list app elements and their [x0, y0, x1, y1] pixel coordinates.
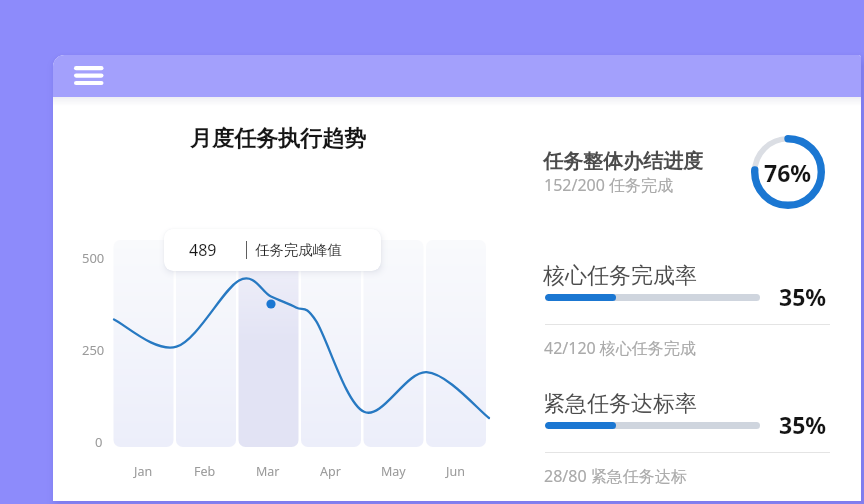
- staticText: 月度任务执行趋势: [190, 125, 366, 153]
- staticText: 152/200 任务完成: [544, 174, 674, 196]
- staticText: 核心任务完成率: [543, 262, 697, 290]
- staticText: 76%: [764, 157, 812, 188]
- staticText: 任务完成峰值: [255, 241, 342, 259]
- staticText: 250: [82, 341, 105, 359]
- staticText: 35%: [779, 409, 827, 440]
- staticText: 489: [189, 239, 217, 261]
- staticText: 42/120 核心任务完成: [544, 337, 696, 359]
- staticText: 0: [95, 433, 103, 451]
- staticText: 紧急任务达标率: [543, 390, 697, 418]
- staticText: Mar: [256, 463, 280, 480]
- staticText: Feb: [194, 463, 216, 480]
- staticText: Apr: [320, 463, 341, 480]
- button[interactable]: 489: [164, 229, 381, 271]
- staticText: May: [381, 463, 406, 480]
- staticText: 28/80 紧急任务达标: [544, 465, 687, 487]
- staticText: Jan: [134, 463, 153, 480]
- staticText: 500: [82, 249, 105, 267]
- staticText: 35%: [779, 281, 827, 312]
- staticText: Jun: [446, 463, 465, 480]
- button[interactable]: Menu: [68, 60, 116, 92]
- staticText: 任务整体办结进度: [543, 149, 703, 174]
